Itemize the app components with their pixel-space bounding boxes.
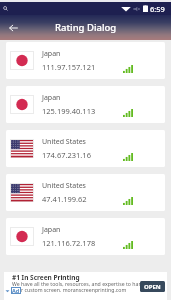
staticText: #1 In Screen Printing — [12, 273, 80, 282]
staticText: 121.116.72.178 — [42, 238, 96, 248]
staticText: We have all the tools, resources, and ex… — [12, 280, 157, 287]
button[interactable]: OPEN — [140, 281, 165, 292]
staticText: Japan — [42, 225, 61, 235]
staticText: United States — [42, 137, 86, 147]
staticText: 6:59 — [150, 4, 165, 14]
staticText: Japan — [42, 49, 61, 59]
staticText: OPEN — [144, 283, 161, 291]
button[interactable]: Japan — [6, 86, 165, 123]
staticText: Rating Dialog — [55, 21, 117, 34]
staticText: Ad — [12, 287, 20, 294]
button[interactable]: United States — [6, 130, 165, 167]
staticText: 111.97.157.121 — [42, 62, 96, 72]
button[interactable]: United States — [6, 174, 165, 211]
button[interactable]: #1 In Screen Printing — [4, 272, 167, 300]
button[interactable]: Japan — [6, 218, 165, 255]
staticText: Japan — [42, 93, 61, 103]
staticText: 125.199.40.113 — [42, 106, 96, 116]
staticText: 174.67.231.16 — [42, 150, 91, 160]
staticText: 47.41.199.62 — [42, 194, 87, 204]
button[interactable]: Back — [0, 15, 26, 40]
staticText: United States — [42, 181, 86, 191]
staticText: your custom screen. moranscreenprinting.… — [12, 286, 127, 293]
button[interactable]: Japan — [6, 42, 165, 79]
